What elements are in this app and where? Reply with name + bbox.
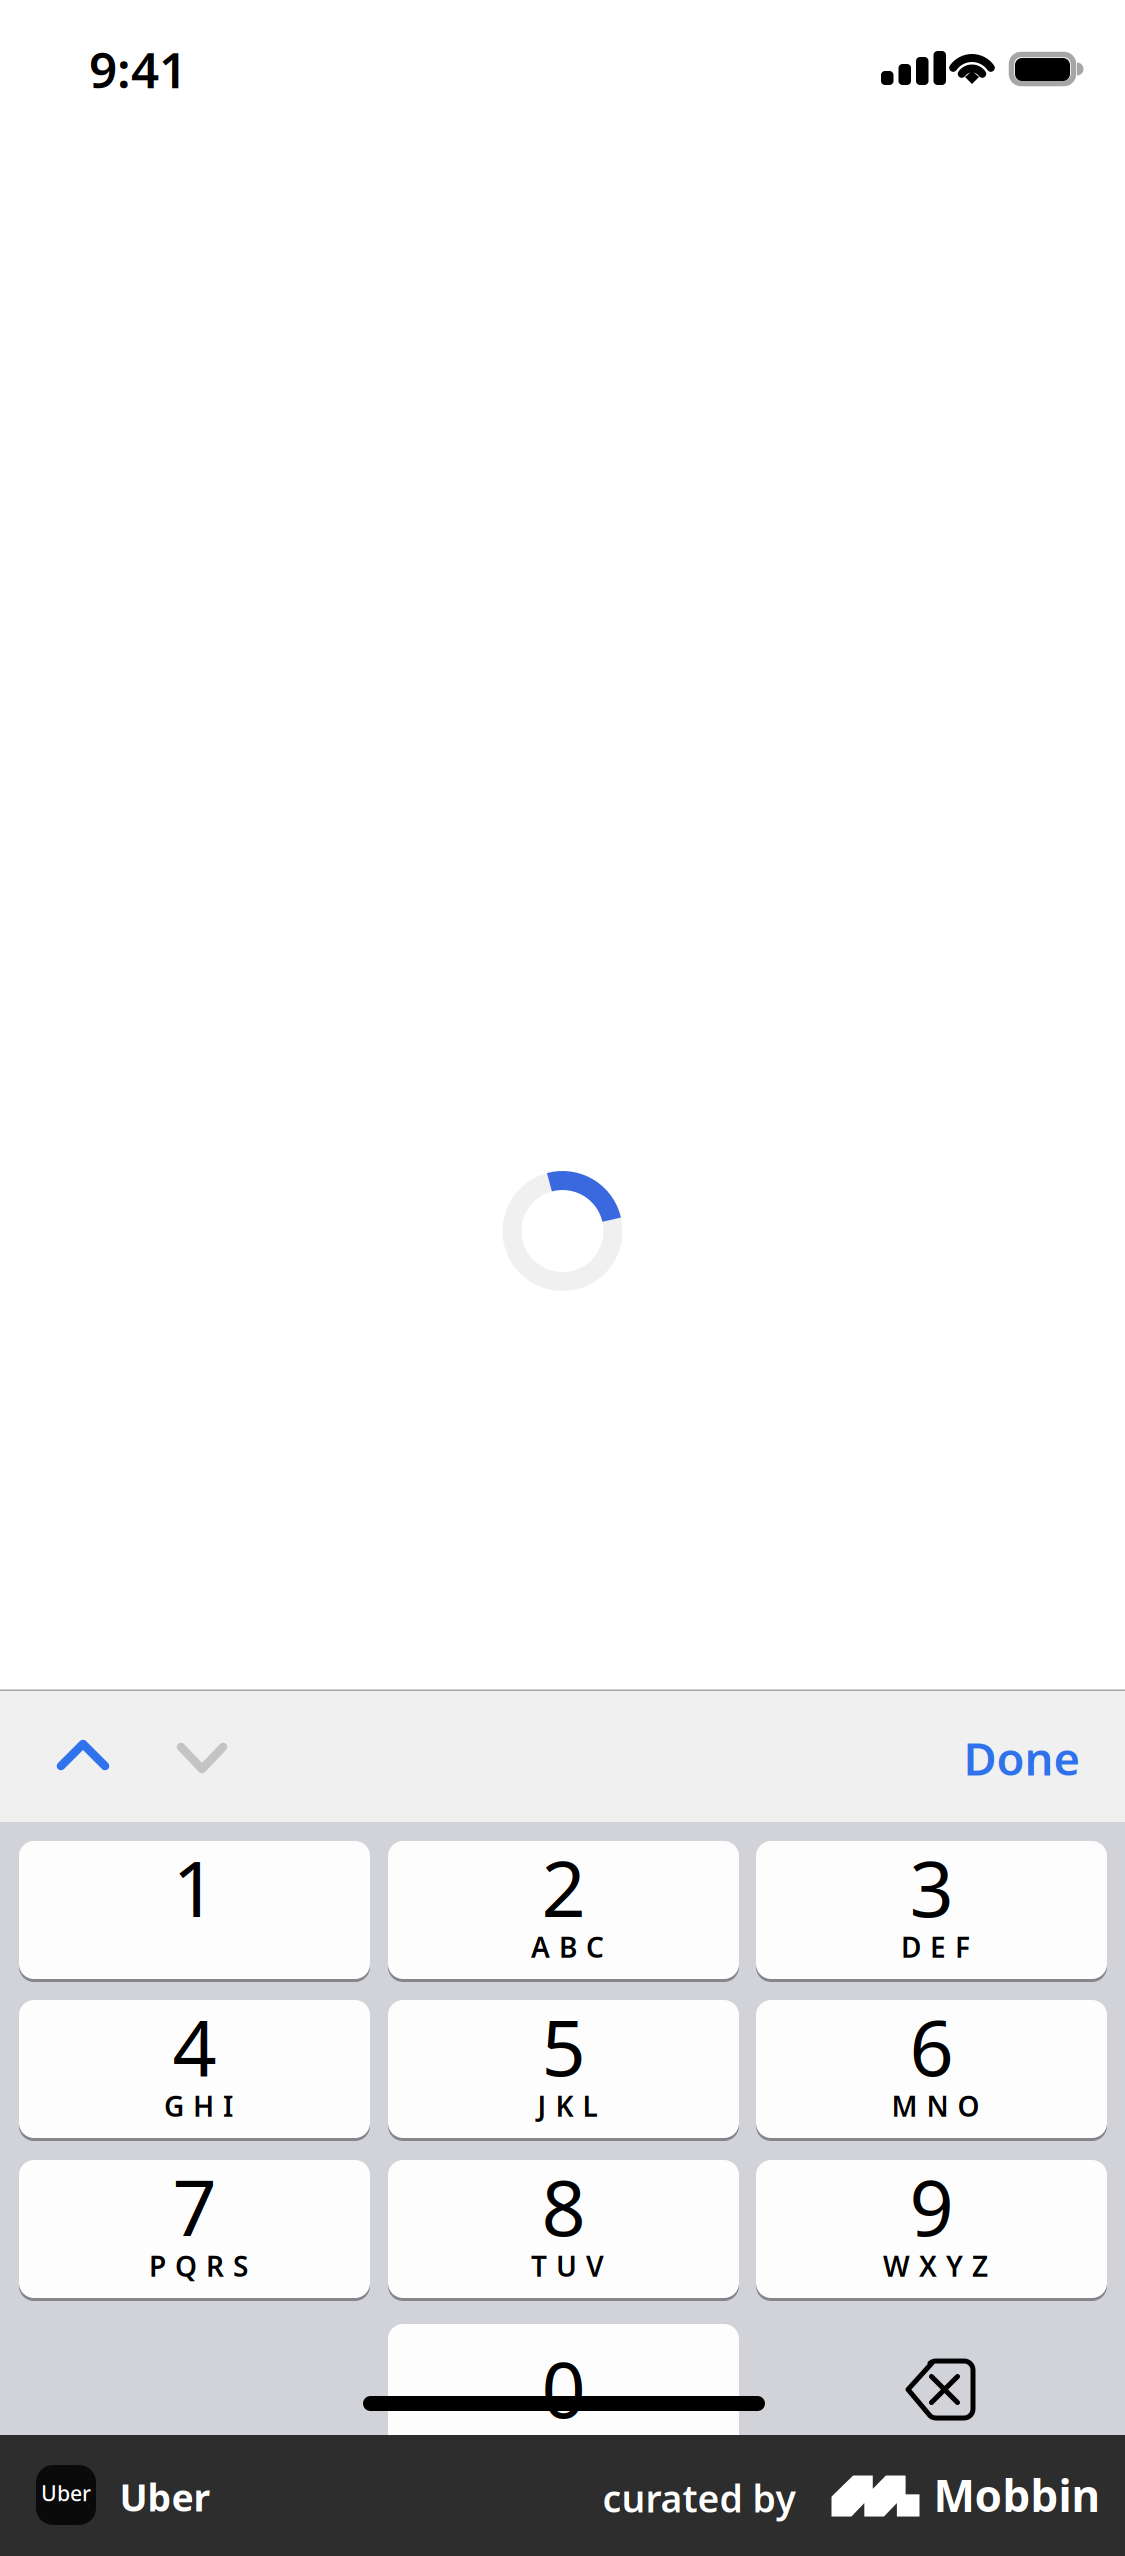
staticText: curated by <box>602 2473 795 2523</box>
staticText: GHI <box>164 2087 233 2125</box>
staticText: TUV <box>531 2247 604 2285</box>
staticText: 1 <box>172 1836 216 1938</box>
button[interactable]: Done <box>0 0 250 110</box>
button[interactable]: 2 <box>0 0 351 138</box>
staticText: WXYZ <box>883 2247 988 2285</box>
button[interactable]: 5 <box>0 0 351 138</box>
staticText: 5 <box>541 1995 585 2097</box>
staticText: PQRS <box>149 2247 248 2285</box>
staticText: 3 <box>909 1836 953 1938</box>
staticText: 8 <box>541 2155 585 2257</box>
button[interactable]: 0 <box>0 0 351 138</box>
button[interactable]: 9 <box>0 0 351 138</box>
button[interactable]: 8 <box>0 0 351 138</box>
staticText: 6 <box>909 1995 953 2097</box>
button[interactable]: 1 <box>0 0 351 138</box>
staticText: 9:41 <box>89 36 187 102</box>
staticText: ABC <box>531 1928 604 1966</box>
staticText: 7 <box>172 2155 216 2257</box>
button[interactable]: Next field <box>0 0 110 110</box>
staticText: 4 <box>172 1995 216 2097</box>
staticText: Uber <box>119 2472 210 2522</box>
button[interactable]: 4 <box>0 0 351 138</box>
staticText: Mobbin <box>933 2466 1100 2524</box>
staticText: DEF <box>901 1928 970 1966</box>
button[interactable]: 3 <box>0 0 351 138</box>
button[interactable]: Delete <box>0 0 351 138</box>
button[interactable]: 7 <box>0 0 351 138</box>
staticText: 2 <box>541 1836 585 1938</box>
staticText: Uber <box>41 2479 91 2507</box>
staticText: 0 <box>541 2337 585 2439</box>
staticText: Done <box>963 1728 1080 1788</box>
button[interactable]: Previous field <box>0 0 110 110</box>
staticText: JKL <box>537 2087 597 2125</box>
staticText: 9 <box>909 2155 953 2257</box>
staticText: MNO <box>891 2087 979 2125</box>
button[interactable]: 6 <box>0 0 351 138</box>
